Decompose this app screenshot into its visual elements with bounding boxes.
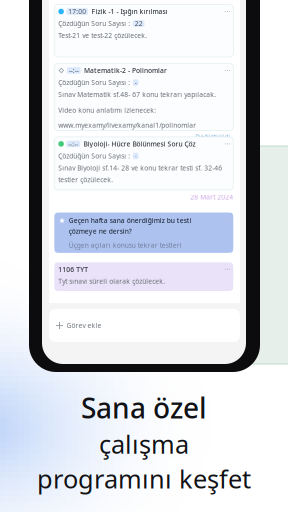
staticText: --:-- — [68, 139, 78, 148]
button[interactable]: Görev ekle — [49, 309, 240, 342]
staticText: --:-- — [69, 66, 79, 75]
staticText: www.myexamy/livexamy/kanal1/polinomlar — [58, 121, 196, 130]
staticText: 22 — [135, 19, 143, 28]
staticText: çözmeye ne dersin? — [69, 227, 132, 236]
staticText: testler çözülecek. — [58, 175, 113, 184]
button[interactable]: --:-- — [54, 63, 233, 130]
staticText: Biyoloji- Hücre Bölünmesi Soru Çöz — [83, 139, 195, 148]
staticText: 17:00 — [68, 7, 86, 16]
staticText: Geçen hafta sana önerdiğimiz bu testi — [69, 216, 192, 225]
staticText: Çözdüğün Soru Sayısı : — [58, 151, 130, 160]
staticText: programını keşfet — [37, 462, 251, 495]
staticText: Fizik -1 - Işığın kırılması — [91, 7, 167, 16]
staticText: - — [135, 151, 137, 160]
staticText: Üçgen açıları konusu tekrar testleri — [69, 241, 182, 250]
staticText: Tyt sınavı süreli olarak çözülecek. — [58, 277, 165, 286]
button[interactable]: --:-- — [54, 137, 233, 190]
staticText: Video konu anlatımı izlenecek: — [58, 106, 156, 115]
staticText: 1106 TYT — [58, 265, 88, 274]
button[interactable]: Geçen hafta sana önerdiğimiz bu testi — [54, 212, 233, 253]
button[interactable]: 17:00 — [54, 4, 233, 57]
staticText: 28 Mart 2024 — [190, 193, 233, 201]
staticText: - — [135, 78, 137, 87]
staticText: Sana özel — [81, 389, 207, 426]
staticText: Sınav Biyoloji sf.14- 28 ve konu tekrar … — [58, 163, 222, 172]
staticText: Değiştirildi — [195, 133, 230, 141]
staticText: Sınav Matematik sf.48- 67 konu tekrarı y… — [58, 90, 216, 99]
staticText: Matematik-2 - Polinomlar — [84, 66, 167, 75]
staticText: Görev ekle — [66, 321, 101, 330]
staticText: Çözdüğün Soru Sayısı : — [58, 78, 130, 87]
staticText: Test-21 ve test-22 çözülecek. — [58, 31, 147, 40]
staticText: çalışma — [99, 427, 189, 461]
button[interactable]: 1106 TYT — [54, 262, 233, 291]
staticText: Çözdüğün Soru Sayısı : — [58, 19, 130, 28]
